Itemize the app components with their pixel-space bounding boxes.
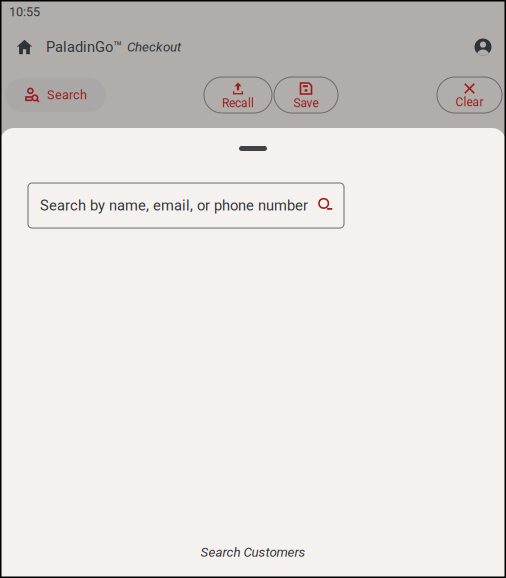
staticText: 10:55 bbox=[9, 5, 40, 19]
staticText: Save bbox=[293, 96, 318, 110]
staticText: Search Customers bbox=[200, 544, 305, 560]
staticText: Search bbox=[47, 88, 87, 102]
staticText: Clear bbox=[455, 95, 483, 109]
staticText: Recall bbox=[222, 96, 254, 110]
button[interactable]: Clear bbox=[437, 77, 502, 113]
staticText: Search by name, email, or phone number bbox=[40, 197, 308, 214]
button[interactable]: Search bbox=[5, 78, 106, 112]
staticText: PaladinGo™ bbox=[46, 38, 122, 56]
button[interactable]: Account bbox=[472, 36, 494, 58]
button[interactable]: Home bbox=[11, 34, 37, 60]
button[interactable]: Recall bbox=[204, 77, 272, 113]
staticText: Checkout bbox=[127, 39, 181, 55]
button[interactable]: Save bbox=[274, 77, 338, 113]
